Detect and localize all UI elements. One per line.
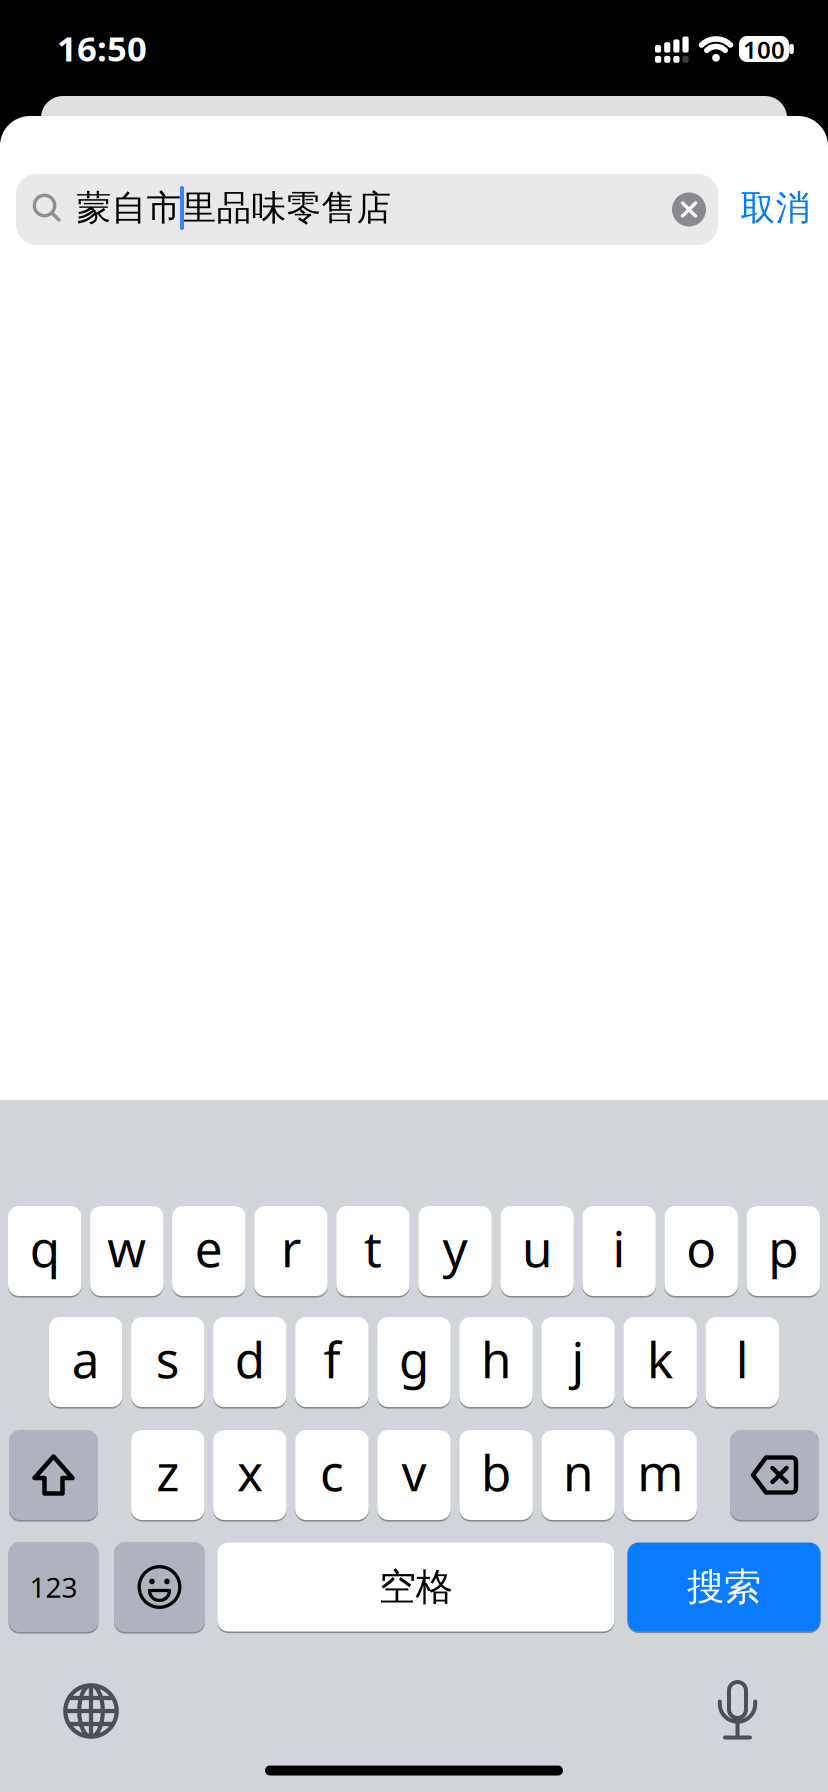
staticText: n bbox=[563, 1439, 593, 1505]
staticText: j bbox=[572, 1326, 585, 1392]
button[interactable]: u bbox=[500, 1206, 574, 1296]
button[interactable]: d bbox=[213, 1317, 287, 1407]
button[interactable]: o bbox=[664, 1206, 738, 1296]
button[interactable]: h bbox=[459, 1317, 533, 1407]
button[interactable]: n bbox=[541, 1430, 615, 1520]
staticText: 100 bbox=[743, 34, 785, 65]
button[interactable]: g bbox=[377, 1317, 451, 1407]
button[interactable]: 取消 bbox=[740, 187, 810, 229]
button[interactable]: v bbox=[377, 1430, 451, 1520]
button[interactable]: 搜索 bbox=[627, 1542, 820, 1631]
staticText: 空格 bbox=[379, 1564, 453, 1610]
staticText: s bbox=[156, 1326, 180, 1392]
button[interactable]: c bbox=[295, 1430, 369, 1520]
button[interactable]: y bbox=[418, 1206, 492, 1296]
staticText: l bbox=[736, 1326, 749, 1392]
button[interactable]: s bbox=[131, 1317, 205, 1407]
button[interactable]: 空格 bbox=[217, 1542, 614, 1631]
staticText: f bbox=[323, 1326, 340, 1392]
button[interactable]: Emoji bbox=[114, 1542, 205, 1632]
staticText: b bbox=[481, 1439, 511, 1505]
staticText: p bbox=[768, 1215, 798, 1281]
staticText: m bbox=[637, 1439, 683, 1505]
staticText: a bbox=[72, 1326, 100, 1392]
button[interactable]: k bbox=[623, 1317, 697, 1407]
button[interactable]: Numbers bbox=[8, 1542, 98, 1632]
button[interactable]: l bbox=[705, 1317, 779, 1407]
button[interactable]: Clear text bbox=[672, 192, 706, 226]
button[interactable]: z bbox=[131, 1430, 205, 1520]
button[interactable]: a bbox=[49, 1317, 122, 1407]
staticText: 搜索 bbox=[687, 1564, 761, 1610]
button[interactable]: f bbox=[295, 1317, 369, 1407]
staticText: y bbox=[442, 1215, 467, 1281]
staticText: q bbox=[30, 1215, 60, 1281]
button[interactable]: Next keyboard bbox=[63, 1683, 119, 1739]
staticText: z bbox=[156, 1439, 179, 1505]
button[interactable]: m bbox=[623, 1430, 697, 1520]
staticText: 取消 bbox=[740, 187, 810, 229]
button[interactable]: Shift bbox=[9, 1430, 98, 1520]
staticText: o bbox=[686, 1215, 716, 1281]
staticText: c bbox=[320, 1439, 344, 1505]
staticText: 16:50 bbox=[57, 25, 147, 71]
staticText: r bbox=[281, 1215, 301, 1281]
button[interactable]: b bbox=[459, 1430, 533, 1520]
staticText: k bbox=[647, 1326, 673, 1392]
button[interactable]: Search field bbox=[16, 174, 718, 245]
button[interactable]: e bbox=[172, 1206, 246, 1296]
button[interactable]: i bbox=[582, 1206, 656, 1296]
staticText: 123 bbox=[29, 1568, 77, 1606]
staticText: d bbox=[235, 1326, 265, 1392]
button[interactable]: Dictation bbox=[709, 1680, 765, 1740]
button[interactable]: q bbox=[8, 1206, 81, 1296]
staticText: v bbox=[401, 1439, 426, 1505]
button[interactable]: Delete bbox=[730, 1430, 819, 1520]
button[interactable]: x bbox=[213, 1430, 287, 1520]
button[interactable]: j bbox=[541, 1317, 615, 1407]
staticText: g bbox=[399, 1326, 429, 1392]
button[interactable]: p bbox=[746, 1206, 820, 1296]
staticText: 蒙自市里品味零售店 bbox=[76, 187, 391, 229]
staticText: u bbox=[522, 1215, 552, 1281]
button[interactable]: w bbox=[90, 1206, 163, 1296]
staticText: x bbox=[237, 1439, 263, 1505]
staticText: w bbox=[107, 1215, 146, 1281]
staticText: i bbox=[613, 1215, 626, 1281]
staticText: t bbox=[364, 1215, 382, 1281]
staticText: h bbox=[481, 1326, 511, 1392]
staticText: e bbox=[195, 1215, 223, 1281]
button[interactable]: r bbox=[254, 1206, 328, 1296]
button[interactable]: t bbox=[336, 1206, 410, 1296]
